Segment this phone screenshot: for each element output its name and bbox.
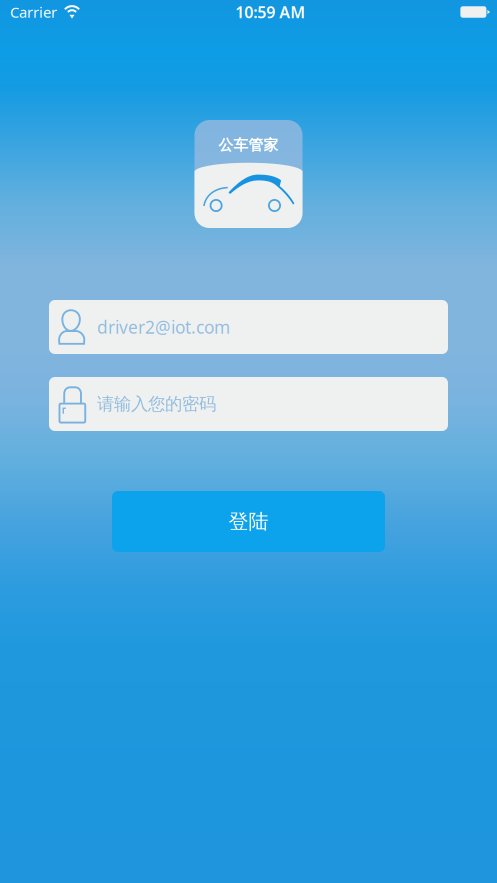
button[interactable]: 登陆 xyxy=(112,491,385,552)
staticText: 10:59 AM xyxy=(235,1,305,23)
staticText: 公车管家 xyxy=(218,136,278,154)
staticText: driver2@iot.com xyxy=(97,315,230,338)
staticText: 登陆 xyxy=(228,509,268,534)
staticText: Carrier xyxy=(10,2,57,22)
staticText: 请输入您的密码 xyxy=(97,393,216,415)
